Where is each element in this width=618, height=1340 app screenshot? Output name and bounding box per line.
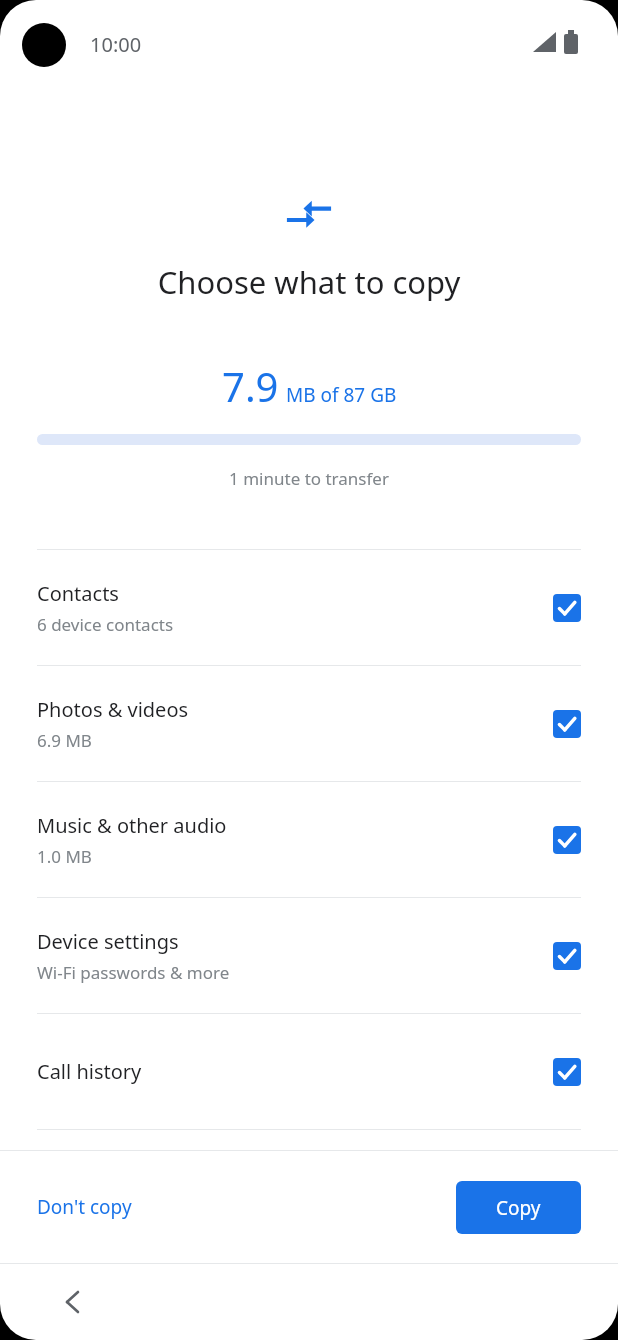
staticText: Call history [37,1058,142,1085]
button[interactable]: Music & other audio [0,782,618,897]
staticText: Device settings [37,928,179,955]
staticText: 10:00 [90,31,142,58]
staticText: 1 minute to transfer [0,467,618,490]
staticText: 6.9 MB [37,729,92,752]
staticText: Choose what to copy [0,261,618,303]
staticText: Contacts [37,580,119,607]
staticText: Photos & videos [37,696,189,723]
staticText: Music & other audio [37,812,227,839]
button[interactable]: Back [52,1282,92,1322]
button[interactable]: Contacts [0,550,618,665]
staticText: Wi-Fi passwords & more [37,961,230,984]
staticText: 1.0 MB [37,845,92,868]
button[interactable]: Photos & videos [0,666,618,781]
staticText: 7.9 [222,359,279,413]
staticText: 6 device contacts [37,613,174,636]
button[interactable]: Copy [456,1181,581,1234]
button[interactable]: Don't copy [37,1194,132,1220]
button[interactable]: Call history [0,1014,618,1129]
staticText: Don't copy [37,1194,132,1220]
button[interactable]: Device settings [0,898,618,1013]
staticText: Copy [496,1195,541,1221]
staticText: MB of 87 GB [286,382,397,408]
